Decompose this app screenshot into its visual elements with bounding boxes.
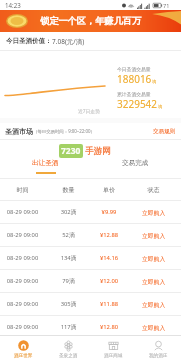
staticText: 滴 <box>158 104 163 109</box>
staticText: 交易规则 <box>153 128 176 135</box>
staticText: 手游网 <box>85 146 111 157</box>
staticText: （每日交易时间：9:00~22:00） <box>33 128 95 134</box>
staticText: 7.08(元/滴) <box>52 37 85 46</box>
staticText: 数量 <box>45 186 92 194</box>
staticText: 52滴 <box>45 231 92 239</box>
staticText: 立即购入 <box>142 278 166 285</box>
staticText: 立即购入 <box>142 232 166 239</box>
button[interactable]: 交易完成 <box>90 140 181 178</box>
button[interactable]: 交易规则 <box>153 128 176 135</box>
staticText: 立即购入 <box>142 255 166 262</box>
staticText: 302滴 <box>45 208 92 216</box>
staticText: 出让圣酒 <box>32 159 59 167</box>
button[interactable]: 立即购入 <box>126 224 181 246</box>
button[interactable]: 08-29 09:00 <box>0 293 181 315</box>
staticText: 酒庄世界 <box>14 353 33 359</box>
staticText: 08-29 09:00 <box>0 277 45 285</box>
button[interactable]: 立即购入 <box>126 270 181 292</box>
staticText: 79滴 <box>45 277 92 285</box>
staticText: 08-29 09:00 <box>0 254 45 262</box>
staticText: 立即购入 <box>142 209 166 216</box>
staticText: 圣泉之酒 <box>59 353 78 359</box>
staticText: 酒庄商城 <box>104 353 123 359</box>
staticText: 滴 <box>152 79 157 84</box>
staticText: 7230 <box>61 145 81 157</box>
staticText: 我的酒庄 <box>149 353 168 359</box>
button[interactable]: 锁定一个区，年赚几百万 <box>0 10 181 32</box>
staticText: 单价 <box>92 186 126 194</box>
button[interactable]: 08-29 09:00 <box>0 201 181 223</box>
button[interactable]: 圣泉之酒 <box>46 336 91 362</box>
staticText: 08-29 09:00 <box>0 323 45 331</box>
staticText: 3229542 <box>117 97 158 111</box>
staticText: 累计圣酒交易量 <box>117 91 151 97</box>
button[interactable]: 08-29 09:00 <box>0 316 181 338</box>
button[interactable]: 酒庄商城 <box>91 336 136 362</box>
staticText: 交易完成 <box>122 159 149 167</box>
staticText: 117滴 <box>45 323 92 331</box>
staticText: 14:23 <box>5 1 21 9</box>
button[interactable]: 立即购入 <box>126 201 181 223</box>
staticText: ¥12.88 <box>92 231 126 239</box>
staticText: ¥11.88 <box>92 300 126 308</box>
button[interactable]: 08-29 09:00 <box>0 224 181 246</box>
staticText: 锁定一个区，年赚几百万 <box>40 15 142 27</box>
staticText: ¥12.80 <box>92 323 126 331</box>
button[interactable]: 酒庄世界 <box>0 336 46 362</box>
staticText: ¥12.00 <box>92 277 126 285</box>
staticText: 立即购入 <box>142 301 166 308</box>
staticText: 134滴 <box>45 254 92 262</box>
button[interactable]: 立即购入 <box>126 247 181 269</box>
staticText: ¥9.99 <box>92 208 126 216</box>
staticText: 71 <box>163 2 170 9</box>
staticText: 08-29 09:00 <box>0 231 45 239</box>
staticText: 近7日走势 <box>78 108 100 115</box>
staticText: ¥14.16 <box>92 254 126 262</box>
button[interactable]: 出让圣酒 <box>0 140 90 178</box>
staticText: 今日圣酒价值： <box>6 37 52 45</box>
staticText: 状态 <box>126 186 181 194</box>
button[interactable]: 08-29 09:00 <box>0 247 181 269</box>
button[interactable]: 立即购入 <box>126 316 181 338</box>
button[interactable]: 立即购入 <box>126 293 181 315</box>
staticText: 时间 <box>0 186 45 194</box>
staticText: 08-29 09:00 <box>0 300 45 308</box>
button[interactable]: 08-29 09:00 <box>0 270 181 292</box>
staticText: 立即购入 <box>142 324 166 331</box>
staticText: 08-29 09:00 <box>0 208 45 216</box>
staticText: 305滴 <box>45 300 92 308</box>
button[interactable]: 我的酒庄 <box>136 336 181 362</box>
staticText: 今日圣酒交易量 <box>117 66 151 72</box>
staticText: 188016 <box>117 72 152 86</box>
staticText: 圣酒市场 <box>5 127 33 136</box>
